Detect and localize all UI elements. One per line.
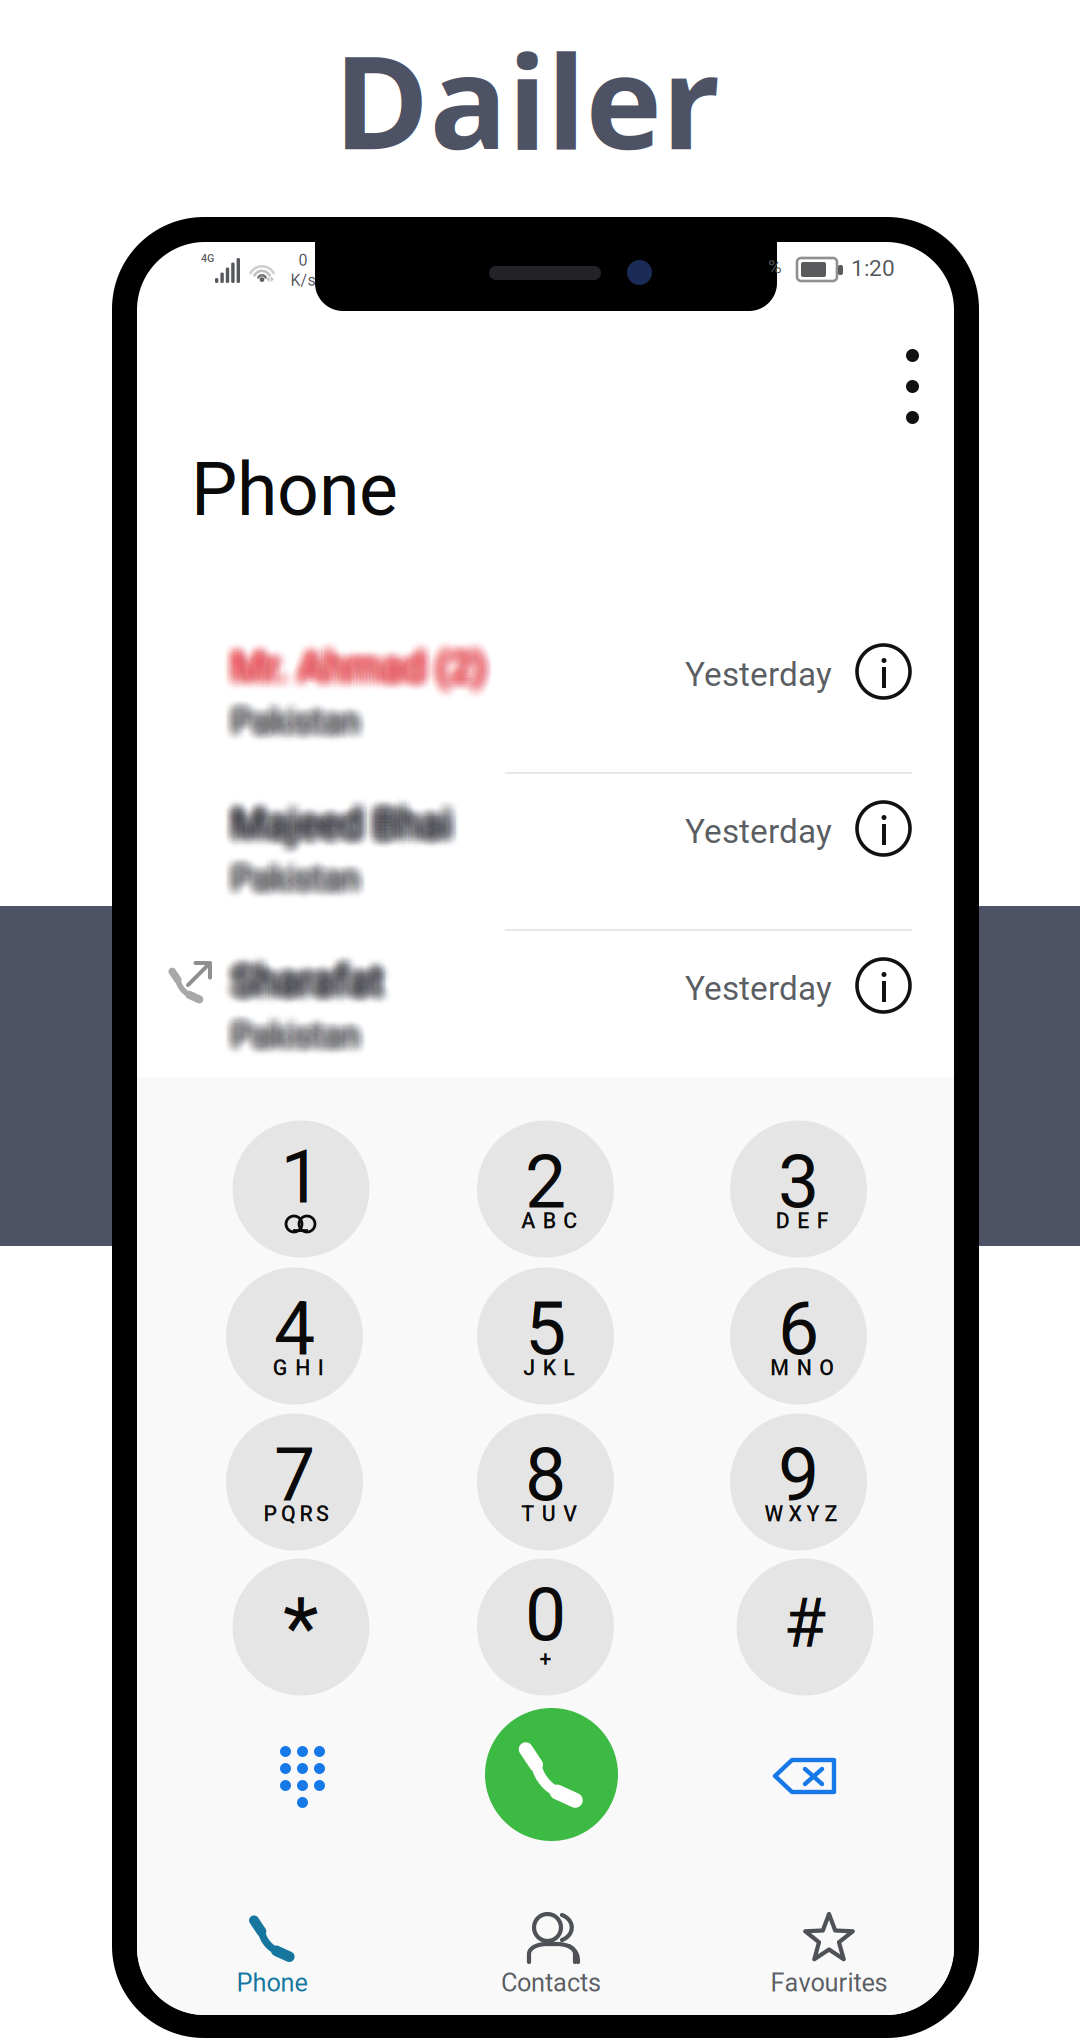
staticText: Sharafat — [234, 962, 386, 1009]
staticText: Pakistan — [231, 859, 359, 898]
staticText: Mr. Ahmad (2) — [222, 648, 477, 695]
staticText: Mr. Ahmad (2) — [224, 654, 479, 701]
staticText: Majeed Bhai — [237, 801, 458, 848]
staticText: Majeed Bhai — [232, 797, 453, 844]
staticText: Pakistan — [234, 862, 362, 901]
button[interactable]: 6 — [736, 1267, 873, 1404]
staticText: Majeed Bhai — [234, 805, 455, 852]
staticText: Pakistan — [237, 851, 365, 890]
staticText: Sharafat — [225, 961, 377, 1008]
staticText: Sharafat — [221, 968, 373, 1015]
staticText: Mr. Ahmad (2) — [222, 640, 477, 687]
button[interactable]: # — [736, 1558, 873, 1695]
button[interactable]: Phone — [162, 1912, 382, 2022]
button[interactable]: 4 — [232, 1267, 369, 1404]
staticText: Mr. Ahmad (2) — [221, 645, 476, 692]
button[interactable]: Show keypad — [274, 1744, 332, 1802]
staticText: Sharafat — [227, 951, 379, 998]
staticText: Pakistan — [240, 865, 368, 904]
staticText: Sharafat — [234, 968, 386, 1015]
staticText: Mr. Ahmad (2) — [224, 635, 479, 682]
staticText: Pakistan — [222, 1020, 350, 1059]
staticText: Pakistan — [236, 862, 364, 901]
button[interactable]: Favourites — [719, 1912, 939, 2022]
button[interactable]: 9 — [736, 1413, 873, 1550]
staticText: Majeed Bhai — [237, 804, 458, 851]
staticText: Pakistan — [234, 853, 362, 892]
button[interactable]: Mr. Ahmad (2) — [231, 640, 953, 790]
staticText: 7 — [274, 1432, 315, 1518]
button[interactable]: More options — [884, 345, 940, 429]
button[interactable]: Delete — [770, 1752, 842, 1800]
staticText: Sharafat — [237, 962, 389, 1009]
staticText: Mr. Ahmad (2) — [232, 653, 487, 699]
staticText: Pakistan — [226, 868, 354, 907]
button[interactable]: 5 — [483, 1267, 620, 1404]
button[interactable]: Contacts — [441, 1912, 661, 2022]
staticText: Majeed Bhai — [228, 811, 449, 858]
staticText: Pakistan — [225, 705, 353, 744]
staticText: Pakistan — [227, 855, 355, 894]
staticText: Pakistan — [234, 699, 362, 738]
staticText: Pakistan — [228, 1016, 356, 1055]
staticText: Majeed Bhai — [227, 795, 448, 842]
staticText: Majeed Bhai — [234, 800, 455, 846]
button[interactable]: 1 — [232, 1120, 369, 1257]
staticText: Mr. Ahmad (2) — [222, 643, 477, 689]
staticText: Sharafat — [231, 957, 383, 1003]
staticText: Mr. Ahmad (2) — [221, 643, 476, 689]
staticText: Mr. Ahmad (2) — [241, 641, 496, 688]
staticText: Sharafat — [222, 964, 374, 1011]
staticText: Mr. Ahmad (2) — [235, 645, 490, 692]
staticText: Majeed Bhai — [230, 797, 451, 844]
staticText: Pakistan — [231, 1015, 359, 1054]
button[interactable]: * — [232, 1558, 369, 1695]
staticText: Pakistan — [231, 1021, 359, 1060]
staticText: Sharafat — [222, 962, 374, 1009]
staticText: Pakistan — [230, 696, 358, 735]
staticText: Pakistan — [240, 707, 368, 746]
staticText: Mr. Ahmad (2) — [222, 637, 477, 684]
staticText: % — [768, 256, 782, 278]
staticText: Majeed Bhai — [241, 805, 462, 852]
staticText: Pakistan — [239, 860, 367, 899]
staticText: Pakistan — [232, 862, 360, 901]
staticText: Majeed Bhai — [234, 798, 455, 845]
staticText: Pakistan — [239, 862, 367, 901]
staticText: Mr. Ahmad (2) — [224, 651, 479, 698]
staticText: Majeed Bhai — [238, 810, 459, 856]
staticText: Pakistan — [223, 1020, 351, 1059]
staticText: Pakistan — [240, 858, 368, 897]
button[interactable]: 2 — [483, 1120, 620, 1257]
staticText: Sharafat — [222, 959, 374, 1006]
staticText: Pakistan — [232, 1021, 360, 1060]
staticText: Sharafat — [231, 961, 383, 1008]
staticText: Pakistan — [234, 859, 362, 898]
staticText: Mr. Ahmad (2) — [225, 634, 480, 681]
staticText: Pakistan — [226, 702, 354, 741]
button[interactable]: 7 — [232, 1413, 369, 1550]
staticText: Sharafat — [227, 962, 379, 1009]
staticText: Pakistan — [237, 859, 365, 898]
staticText: Pakistan — [237, 1024, 365, 1063]
staticText: Pakistan — [225, 1017, 353, 1056]
staticText: Pakistan — [227, 1015, 355, 1054]
staticText: Mr. Ahmad (2) — [221, 644, 476, 691]
button[interactable]: 3 — [736, 1120, 873, 1257]
button[interactable]: Majeed Bhai — [231, 797, 953, 947]
staticText: Pakistan — [228, 867, 356, 906]
staticText: Pakistan — [227, 694, 355, 733]
staticText: Pakistan — [232, 703, 360, 742]
staticText: Sharafat — [240, 959, 392, 1006]
staticText: Pakistan — [236, 1024, 364, 1063]
staticText: Pakistan — [226, 1020, 354, 1059]
button[interactable]: 0 — [483, 1558, 620, 1695]
staticText: Mr. Ahmad (2) — [225, 653, 480, 699]
button[interactable]: Call — [485, 1708, 618, 1841]
button[interactable]: Sharafat — [231, 954, 953, 1104]
staticText: Pakistan — [222, 707, 350, 746]
staticText: Pakistan — [234, 710, 362, 749]
staticText: Mr. Ahmad (2) — [228, 651, 483, 698]
staticText: Sharafat — [222, 967, 374, 1013]
button[interactable]: 8 — [483, 1413, 620, 1550]
